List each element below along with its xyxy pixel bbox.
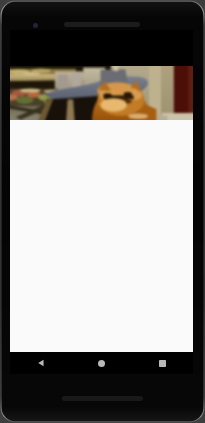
button[interactable]: Home bbox=[71, 352, 132, 374]
button[interactable]: Recents bbox=[132, 352, 193, 374]
button[interactable]: Video bbox=[10, 66, 193, 120]
button[interactable]: Back bbox=[10, 352, 71, 374]
